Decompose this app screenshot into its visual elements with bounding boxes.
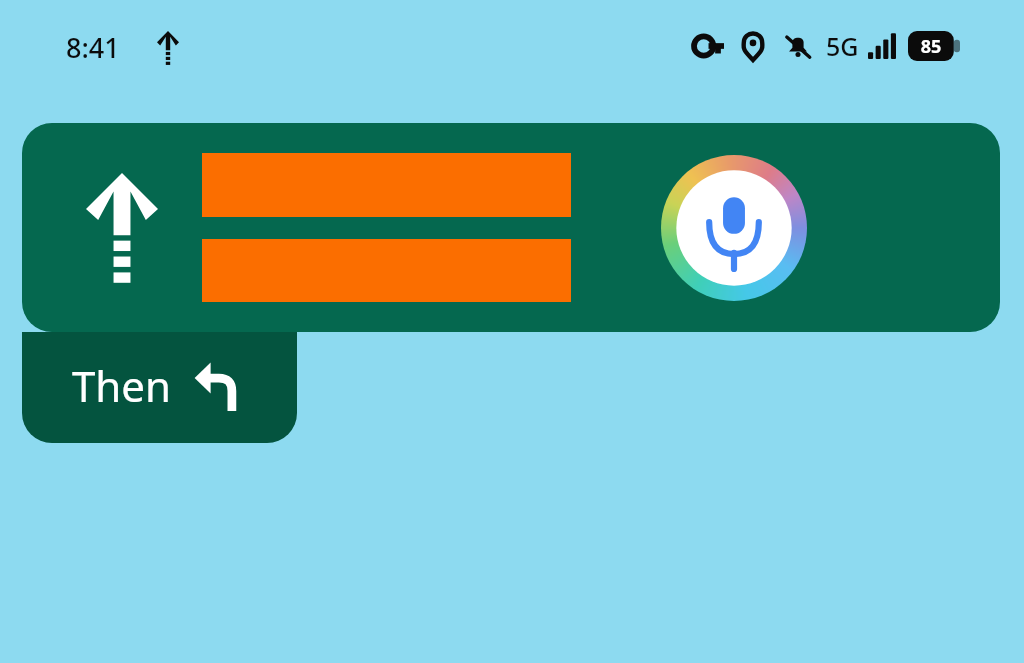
button[interactable]: Google Assistant xyxy=(22,123,1000,332)
staticText: 5G xyxy=(826,29,859,63)
staticText: 8:41 xyxy=(66,29,120,66)
staticText: 85 xyxy=(905,34,957,59)
button[interactable]: Google Assistant xyxy=(661,155,807,301)
staticText: Then xyxy=(72,357,171,414)
button[interactable]: Then xyxy=(22,332,297,443)
